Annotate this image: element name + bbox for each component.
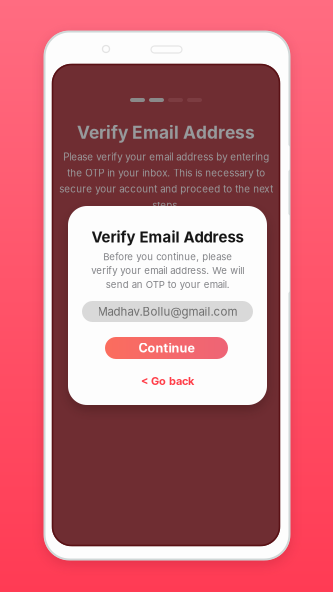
staticText: Continue: [138, 340, 194, 356]
button[interactable]: < Go back: [132, 373, 202, 389]
staticText: Madhav.Bollu@gmail.com: [97, 305, 237, 318]
staticText: < Go back: [141, 374, 194, 388]
staticText: Before you continue, please verify your …: [91, 251, 244, 290]
staticText: Please verify your email address by ente…: [59, 151, 273, 211]
button[interactable]: Continue: [105, 337, 228, 359]
staticText: Verify Email Address: [91, 228, 243, 246]
staticText: Verify Email Address: [77, 122, 255, 143]
